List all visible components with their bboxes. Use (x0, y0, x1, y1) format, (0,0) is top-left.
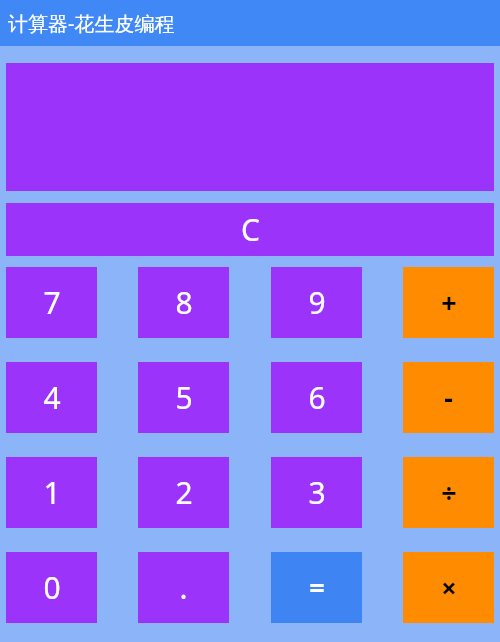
staticText: 1 (43, 472, 61, 513)
staticText: 0 (43, 567, 61, 608)
staticText: 2 (175, 472, 193, 513)
staticText: . (179, 567, 188, 608)
button[interactable]: - (403, 362, 494, 433)
staticText: 9 (308, 282, 326, 323)
staticText: 计算器-花生皮编程 (8, 10, 175, 37)
button[interactable]: ÷ (403, 457, 494, 528)
button[interactable]: + (403, 267, 494, 338)
button[interactable]: C (6, 203, 494, 256)
button[interactable]: 0 (6, 552, 97, 623)
button[interactable]: 4 (6, 362, 97, 433)
button[interactable]: 7 (6, 267, 97, 338)
staticText: 4 (43, 377, 61, 418)
button[interactable]: = (271, 552, 362, 623)
button[interactable]: × (403, 552, 494, 623)
button[interactable]: 3 (271, 457, 362, 528)
button[interactable]: 2 (138, 457, 229, 528)
button[interactable]: 8 (138, 267, 229, 338)
button[interactable]: 1 (6, 457, 97, 528)
staticText: 3 (308, 472, 326, 513)
staticText: + (441, 284, 457, 321)
staticText: 8 (175, 282, 193, 323)
staticText: = (309, 569, 325, 606)
staticText: 5 (175, 377, 193, 418)
button[interactable]: . (138, 552, 229, 623)
button[interactable]: 9 (271, 267, 362, 338)
staticText: × (441, 569, 457, 606)
button[interactable]: 5 (138, 362, 229, 433)
staticText: - (444, 379, 453, 416)
staticText: C (241, 209, 260, 250)
staticText: ÷ (441, 474, 457, 511)
staticText: 7 (43, 282, 61, 323)
button[interactable]: 6 (271, 362, 362, 433)
staticText: 6 (308, 377, 326, 418)
